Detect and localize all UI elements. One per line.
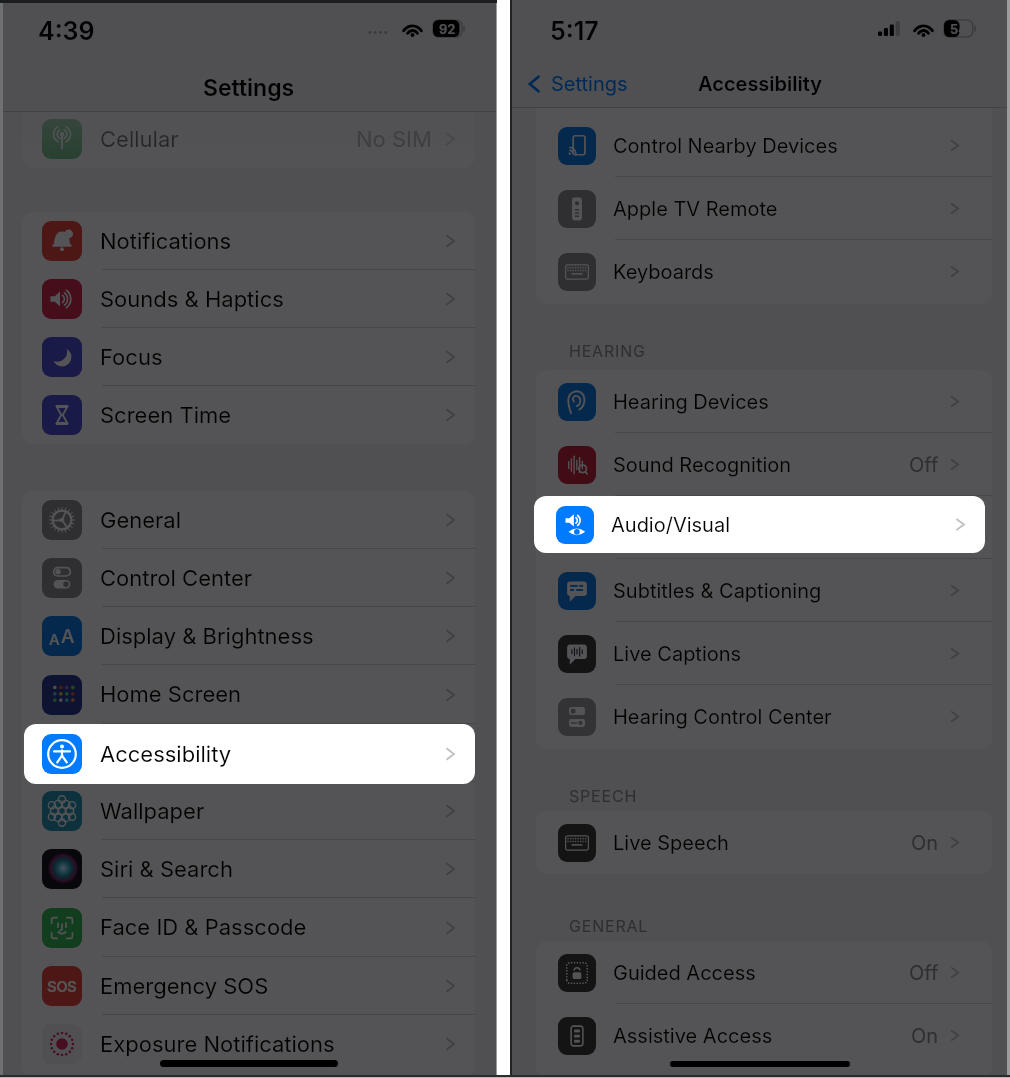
button[interactable]: Back to Settings xyxy=(526,62,628,106)
staticText: Hearing Devices xyxy=(613,390,769,414)
staticText: 4:39 xyxy=(38,16,95,46)
staticText: Notifications xyxy=(100,228,232,255)
staticText: General xyxy=(100,507,182,534)
button[interactable]: Screen Time xyxy=(22,386,475,444)
button[interactable]: Apple TV Remote xyxy=(536,177,992,240)
staticText: 92 xyxy=(439,21,456,37)
button[interactable]: A xyxy=(22,607,475,665)
staticText: Accessibility xyxy=(100,741,232,768)
staticText: Apple TV Remote xyxy=(613,197,778,221)
button[interactable]: Assistive Access xyxy=(536,1004,992,1067)
staticText: A xyxy=(61,625,75,648)
staticText: 54 xyxy=(950,21,967,37)
staticText: Hearing Control Center xyxy=(613,705,832,729)
staticText: On xyxy=(911,1024,939,1048)
staticText: A xyxy=(49,630,60,648)
staticText: Display & Brightness xyxy=(100,623,314,650)
button[interactable]: Keyboards xyxy=(536,240,992,303)
staticText: Guided Access xyxy=(613,961,756,985)
staticText: Sound Recognition xyxy=(613,453,792,477)
button[interactable]: Focus xyxy=(22,328,475,386)
button[interactable]: SOS xyxy=(22,957,475,1015)
button[interactable]: General xyxy=(22,491,475,549)
staticText: Face ID & Passcode xyxy=(100,914,307,941)
button[interactable]: Hearing Control Center xyxy=(536,685,992,748)
button[interactable]: Audio/Visual xyxy=(534,496,985,553)
staticText: Sounds & Haptics xyxy=(100,286,284,313)
staticText: Audio/Visual xyxy=(613,516,733,540)
staticText: GENERAL xyxy=(569,916,649,935)
button[interactable]: Hearing Devices xyxy=(536,370,992,433)
staticText: Off xyxy=(909,453,939,477)
button[interactable]: Exposure Notifications xyxy=(22,1015,475,1073)
button[interactable]: Notifications xyxy=(22,212,475,270)
staticText: Cellular xyxy=(100,126,179,153)
staticText: Siri & Search xyxy=(100,856,233,883)
staticText: Settings xyxy=(551,72,628,96)
staticText: 5:17 xyxy=(550,16,599,46)
button[interactable]: Live Captions xyxy=(536,622,992,685)
staticText: Home Screen xyxy=(100,681,242,708)
staticText: No SIM xyxy=(356,126,432,153)
button[interactable]: Live Speech xyxy=(536,811,992,874)
staticText: Settings xyxy=(203,74,295,102)
staticText: Emergency SOS xyxy=(100,973,269,1000)
button[interactable]: Wallpaper xyxy=(22,782,475,840)
staticText: SPEECH xyxy=(569,786,638,805)
button[interactable]: Sounds & Haptics xyxy=(22,270,475,328)
staticText: Live Captions xyxy=(613,642,742,666)
button[interactable]: Guided Access xyxy=(536,941,992,1004)
button[interactable]: Audio/Visual xyxy=(536,496,992,559)
staticText: Exposure Notifications xyxy=(100,1031,335,1058)
staticText: Off xyxy=(909,961,939,985)
staticText: Keyboards xyxy=(613,260,714,284)
staticText: HEARING xyxy=(569,341,646,360)
staticText: Focus xyxy=(100,344,163,371)
staticText: Subtitles & Captioning xyxy=(613,579,822,603)
button[interactable]: Subtitles & Captioning xyxy=(536,559,992,622)
staticText: Assistive Access xyxy=(613,1024,773,1048)
staticText: On xyxy=(911,831,939,855)
staticText: Control Nearby Devices xyxy=(613,134,838,158)
button[interactable]: Siri & Search xyxy=(22,840,475,898)
staticText: Accessibility xyxy=(100,740,232,767)
button[interactable]: Control Center xyxy=(22,549,475,607)
button[interactable]: Control Nearby Devices xyxy=(536,114,992,177)
staticText: SOS xyxy=(47,977,77,995)
button[interactable]: Home Screen xyxy=(22,665,475,724)
staticText: Live Speech xyxy=(613,831,729,855)
button[interactable]: Face ID & Passcode xyxy=(22,898,475,957)
staticText: Accessibility xyxy=(698,72,823,96)
staticText: Audio/Visual xyxy=(611,513,731,537)
staticText: Wallpaper xyxy=(100,798,205,825)
button[interactable]: Accessibility xyxy=(24,724,475,784)
button[interactable]: Cellular xyxy=(22,110,475,168)
staticText: Screen Time xyxy=(100,402,232,429)
staticText: Control Center xyxy=(100,565,253,592)
button[interactable]: Sound Recognition xyxy=(536,433,992,496)
button[interactable]: Accessibility xyxy=(22,724,475,782)
